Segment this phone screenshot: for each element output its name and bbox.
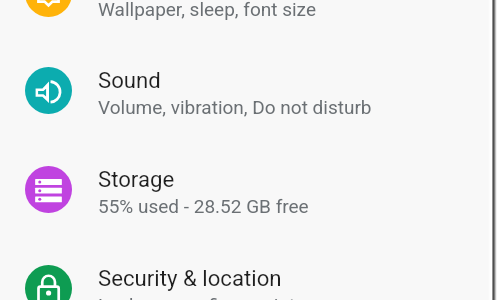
staticText: Volume, vibration, Do not disturb [98, 96, 372, 118]
staticText: Sound [98, 67, 161, 93]
staticText: 55% used - 28.52 GB free [98, 195, 309, 217]
staticText: Lock screen, fingerprint [98, 294, 296, 300]
button[interactable]: Display [0, 0, 492, 38]
staticText: Wallpaper, sleep, font size [98, 0, 316, 20]
button[interactable]: Sound [0, 38, 492, 137]
staticText: Storage [98, 166, 175, 192]
button[interactable]: Security & location [0, 236, 492, 300]
staticText: Security & location [98, 265, 282, 291]
button[interactable]: Storage [0, 137, 492, 236]
